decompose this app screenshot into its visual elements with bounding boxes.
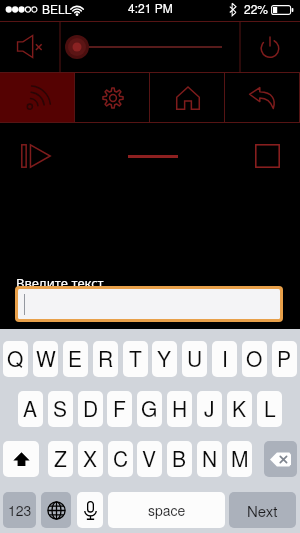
button[interactable]: P bbox=[272, 341, 297, 377]
staticText: U bbox=[187, 343, 203, 373]
button[interactable]: Q bbox=[3, 341, 28, 377]
staticText: 4:21 PM bbox=[128, 0, 173, 16]
staticText: C bbox=[113, 443, 129, 473]
button[interactable]: Next bbox=[229, 492, 296, 528]
staticText: 22% bbox=[244, 0, 269, 17]
staticText: O bbox=[246, 343, 263, 373]
button[interactable]: F bbox=[107, 391, 132, 427]
button[interactable]: Minimize bbox=[121, 142, 185, 170]
staticText: space bbox=[148, 500, 186, 520]
button[interactable]: J bbox=[197, 391, 222, 427]
button[interactable]: C bbox=[108, 441, 133, 477]
staticText: M bbox=[231, 443, 249, 473]
button[interactable]: Dictate bbox=[77, 492, 103, 528]
staticText: S bbox=[53, 393, 68, 423]
button[interactable]: Signal bbox=[0, 72, 75, 123]
staticText: X bbox=[83, 443, 98, 473]
staticText: H bbox=[172, 393, 188, 423]
button[interactable]: space bbox=[108, 492, 225, 528]
button[interactable]: Mute bbox=[0, 21, 60, 72]
staticText: G bbox=[141, 393, 158, 423]
staticText: A bbox=[23, 393, 38, 423]
button[interactable]: E bbox=[63, 341, 88, 377]
button[interactable] bbox=[18, 289, 280, 319]
button[interactable]: Volume bbox=[61, 21, 239, 72]
button[interactable]: V bbox=[137, 441, 162, 477]
button[interactable]: R bbox=[93, 341, 118, 377]
button[interactable]: N bbox=[197, 441, 222, 477]
staticText: V bbox=[142, 443, 157, 473]
button[interactable]: Stop bbox=[253, 142, 282, 170]
staticText: Q bbox=[7, 343, 24, 373]
button[interactable]: D bbox=[78, 391, 103, 427]
staticText: W bbox=[36, 343, 56, 373]
staticText: E bbox=[68, 343, 83, 373]
button[interactable]: G bbox=[137, 391, 162, 427]
button[interactable]: Switch keyboard bbox=[41, 492, 71, 528]
staticText: I bbox=[222, 343, 228, 373]
button[interactable]: T bbox=[123, 341, 148, 377]
staticText: B bbox=[172, 443, 187, 473]
staticText: P bbox=[277, 343, 292, 373]
button[interactable]: K bbox=[227, 391, 252, 427]
staticText: L bbox=[264, 393, 276, 423]
button[interactable]: Shift bbox=[3, 441, 39, 477]
button[interactable]: Back bbox=[225, 72, 300, 123]
staticText: D bbox=[83, 393, 99, 423]
button[interactable]: S bbox=[48, 391, 73, 427]
staticText: Введите текст bbox=[16, 273, 104, 292]
button[interactable]: B bbox=[167, 441, 192, 477]
staticText: Y bbox=[157, 343, 172, 373]
button[interactable]: A bbox=[18, 391, 43, 427]
button[interactable]: O bbox=[242, 341, 267, 377]
button[interactable]: I bbox=[212, 341, 237, 377]
button[interactable]: Y bbox=[152, 341, 177, 377]
button[interactable]: L bbox=[257, 391, 282, 427]
button[interactable]: W bbox=[33, 341, 58, 377]
button[interactable]: Backspace bbox=[264, 441, 297, 477]
button[interactable]: M bbox=[227, 441, 252, 477]
staticText: K bbox=[232, 393, 247, 423]
button[interactable]: Power bbox=[240, 21, 300, 72]
button[interactable]: 123 bbox=[3, 492, 36, 528]
button[interactable]: H bbox=[167, 391, 192, 427]
staticText: Z bbox=[54, 443, 67, 473]
staticText: T bbox=[129, 343, 142, 373]
button[interactable]: U bbox=[182, 341, 207, 377]
button[interactable]: Home bbox=[150, 72, 225, 123]
button[interactable]: Z bbox=[48, 441, 73, 477]
staticText: J bbox=[204, 393, 215, 423]
button[interactable]: Play bbox=[17, 142, 55, 170]
staticText: N bbox=[202, 443, 218, 473]
staticText: R bbox=[98, 343, 114, 373]
staticText: Next bbox=[247, 500, 278, 521]
staticText: BELL bbox=[42, 0, 72, 17]
button[interactable]: X bbox=[78, 441, 103, 477]
button[interactable]: Settings bbox=[75, 72, 150, 123]
staticText: 123 bbox=[8, 500, 32, 520]
staticText: F bbox=[113, 393, 126, 423]
